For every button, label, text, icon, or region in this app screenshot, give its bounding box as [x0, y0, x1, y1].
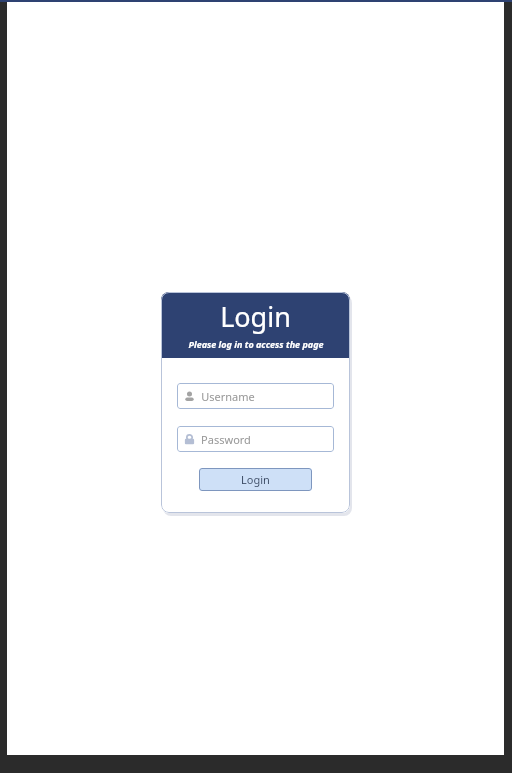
- staticText: Please log in to access the page: [188, 338, 324, 350]
- button[interactable]: Login: [199, 468, 312, 491]
- staticText: Login: [220, 298, 291, 335]
- button[interactable]: Password: [177, 426, 334, 452]
- staticText: Password: [201, 432, 251, 447]
- staticText: Username: [201, 389, 255, 404]
- button[interactable]: Username: [177, 383, 334, 409]
- staticText: Login: [241, 472, 270, 487]
